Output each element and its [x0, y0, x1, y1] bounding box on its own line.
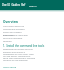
staticText: Every module ships with docs and runnabl…: [3, 34, 30, 43]
staticText: 1. Install the command line tools: [3, 44, 45, 48]
staticText: Dev UI Guides Ref: [2, 3, 26, 7]
staticText: Overview: [3, 20, 19, 24]
staticText: Learn more: [3, 65, 16, 68]
button[interactable]: Learn more: [3, 65, 16, 68]
staticText: Sign in: [29, 4, 37, 7]
staticText: Download the archive for your platform a…: [3, 48, 36, 62]
button[interactable]: Dev UI Guides Ref: [0, 0, 64, 10]
staticText: The toolkit gives you composable buildin…: [3, 25, 30, 37]
button[interactable]: 1. Install the command line tools: [3, 44, 45, 48]
